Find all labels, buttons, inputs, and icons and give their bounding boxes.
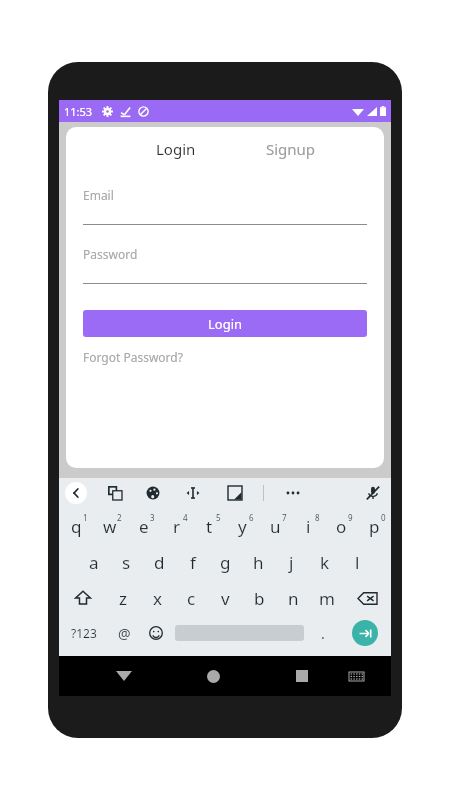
staticText: g xyxy=(220,551,231,574)
button[interactable]: a xyxy=(77,544,110,580)
button[interactable]: c xyxy=(174,580,208,616)
staticText: 9 xyxy=(348,512,353,523)
button[interactable]: Enter xyxy=(352,620,378,646)
staticText: h xyxy=(253,551,264,574)
staticText: Login xyxy=(156,139,196,159)
button[interactable]: Recents xyxy=(275,656,329,696)
button[interactable]: ?123 xyxy=(59,616,108,650)
staticText: v xyxy=(221,587,230,610)
button[interactable]: i xyxy=(292,508,325,544)
button[interactable]: t xyxy=(193,508,226,544)
button[interactable]: o xyxy=(325,508,358,544)
button[interactable]: j xyxy=(275,544,308,580)
staticText: 4 xyxy=(183,512,188,523)
staticText: k xyxy=(320,551,330,574)
staticText: j xyxy=(289,551,294,574)
button[interactable]: More options xyxy=(283,483,303,503)
button[interactable]: y xyxy=(226,508,259,544)
staticText: r xyxy=(173,515,181,538)
staticText: p xyxy=(369,515,380,538)
button[interactable]: Switch keyboard xyxy=(329,656,383,696)
button[interactable]: Voice input off xyxy=(363,483,383,503)
button[interactable]: m xyxy=(310,580,344,616)
staticText: Forgot Password? xyxy=(83,349,183,365)
staticText: 6 xyxy=(249,512,254,523)
staticText: c xyxy=(187,587,196,610)
button[interactable]: l xyxy=(341,544,374,580)
staticText: q xyxy=(71,515,82,538)
button[interactable]: w xyxy=(93,508,127,544)
staticText: a xyxy=(89,551,99,574)
staticText: t xyxy=(206,515,213,538)
staticText: b xyxy=(254,587,265,610)
staticText: o xyxy=(336,515,347,538)
button[interactable]: n xyxy=(276,580,310,616)
button[interactable]: Back xyxy=(97,656,151,696)
button[interactable]: k xyxy=(308,544,341,580)
button[interactable]: Backspace xyxy=(344,580,391,616)
button[interactable]: Login xyxy=(83,310,367,337)
button[interactable]: f xyxy=(176,544,209,580)
button[interactable]: h xyxy=(242,544,275,580)
button[interactable]: b xyxy=(242,580,276,616)
staticText: 2 xyxy=(117,512,122,523)
button[interactable]: s xyxy=(110,544,143,580)
button[interactable]: Text editing xyxy=(183,483,203,503)
staticText: 1 xyxy=(83,512,88,523)
button[interactable]: u xyxy=(259,508,292,544)
button[interactable]: v xyxy=(208,580,242,616)
button[interactable]: e xyxy=(127,508,160,544)
button[interactable]: Shift xyxy=(59,580,106,616)
button[interactable]: Login xyxy=(122,127,230,173)
button[interactable]: p xyxy=(358,508,391,544)
staticText: e xyxy=(139,515,149,538)
staticText: n xyxy=(288,587,299,610)
staticText: 8 xyxy=(315,512,320,523)
button[interactable]: Theme xyxy=(143,483,163,503)
staticText: Signup xyxy=(266,139,316,159)
staticText: y xyxy=(238,515,247,538)
staticText: d xyxy=(154,551,165,574)
staticText: Email xyxy=(83,187,114,203)
staticText: 3 xyxy=(150,512,155,523)
staticText: 7 xyxy=(282,512,287,523)
button[interactable]: r xyxy=(160,508,193,544)
staticText: 11:53 xyxy=(64,104,93,119)
staticText: Password xyxy=(83,246,138,262)
staticText: ?123 xyxy=(71,625,97,641)
staticText: 5 xyxy=(216,512,221,523)
staticText: 0 xyxy=(381,512,386,523)
button[interactable]: @ xyxy=(108,616,140,650)
staticText: x xyxy=(153,587,162,610)
staticText: m xyxy=(319,587,335,610)
staticText: @ xyxy=(118,624,131,643)
staticText: s xyxy=(122,551,131,574)
button[interactable]: Forgot Password? xyxy=(83,349,183,365)
staticText: z xyxy=(119,587,127,610)
button[interactable]: z xyxy=(106,580,140,616)
button[interactable]: d xyxy=(143,544,176,580)
button[interactable]: q xyxy=(59,508,93,544)
staticText: l xyxy=(355,551,360,574)
button[interactable]: Back xyxy=(65,482,87,504)
button[interactable]: Home xyxy=(186,656,240,696)
button[interactable]: Stickers xyxy=(225,483,245,503)
staticText: f xyxy=(190,551,196,574)
button[interactable]: x xyxy=(140,580,174,616)
staticText: w xyxy=(103,515,117,538)
staticText: . xyxy=(321,624,325,643)
staticText: i xyxy=(306,515,311,538)
button[interactable]: . xyxy=(307,616,339,650)
staticText: Login xyxy=(208,315,243,333)
button[interactable]: Signup xyxy=(254,127,328,171)
button[interactable]: Translate xyxy=(105,483,125,503)
button[interactable]: g xyxy=(209,544,242,580)
button[interactable]: Emoji xyxy=(140,616,172,650)
staticText: u xyxy=(270,515,281,538)
